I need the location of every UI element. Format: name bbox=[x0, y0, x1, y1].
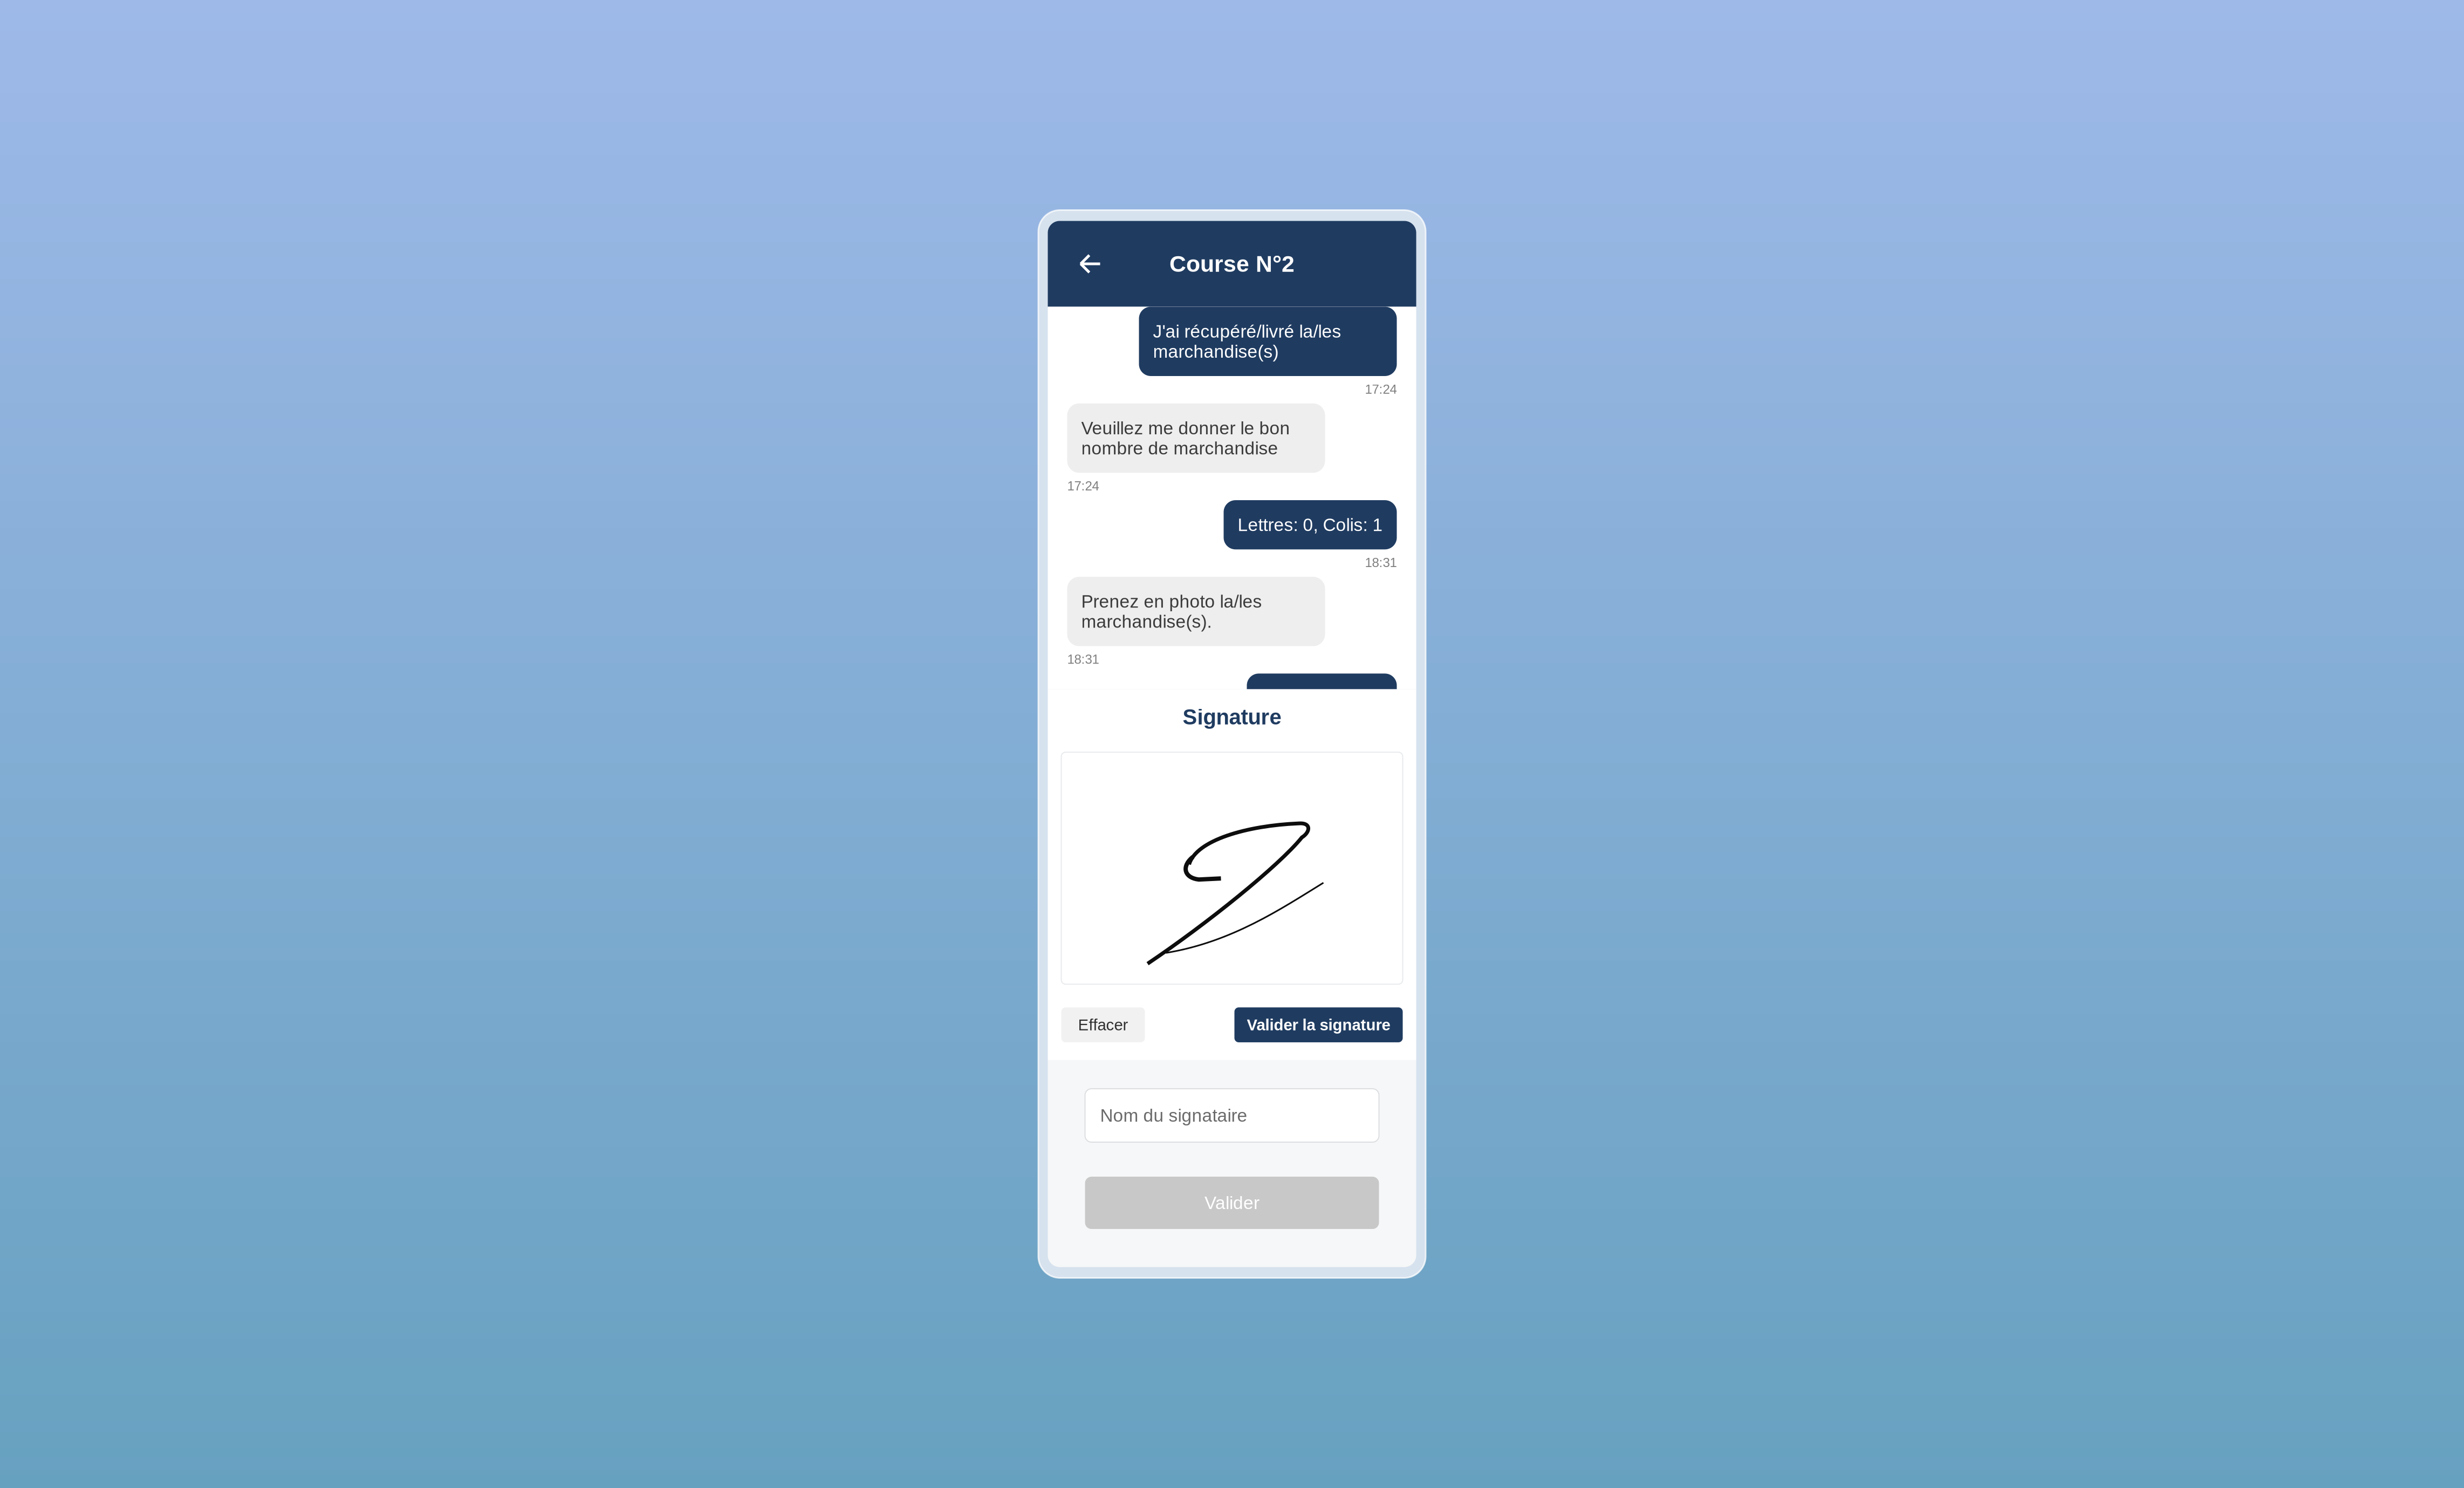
button[interactable]: Valider la signature bbox=[1234, 1007, 1403, 1042]
staticText: 18:31 bbox=[1365, 555, 1397, 570]
button[interactable]: Effacer bbox=[1061, 1007, 1145, 1042]
staticText: 18:31 bbox=[1067, 652, 1099, 667]
staticText: Photo envoyée bbox=[1261, 688, 1383, 708]
staticText: Signature bbox=[1183, 705, 1281, 729]
button[interactable]: Nom du signataire bbox=[1085, 1089, 1379, 1142]
staticText: J'ai récupéré/livré la/les marchandise(s… bbox=[1153, 321, 1341, 361]
staticText: 17:24 bbox=[1365, 382, 1397, 396]
staticText: Veuillez me donner le bon nombre de marc… bbox=[1081, 418, 1290, 458]
staticText: Effacer bbox=[1078, 1016, 1128, 1034]
staticText: Course N°2 bbox=[1169, 251, 1295, 277]
staticText: Prenez en photo la/les marchandise(s). bbox=[1081, 591, 1262, 632]
button[interactable]: Back bbox=[1048, 246, 1113, 282]
staticText: Nom du signataire bbox=[1100, 1105, 1247, 1125]
button[interactable]: Valider bbox=[1085, 1177, 1379, 1229]
staticText: Valider bbox=[1204, 1193, 1260, 1213]
staticText: Lettres: 0, Colis: 1 bbox=[1238, 515, 1383, 535]
staticText: 17:24 bbox=[1067, 479, 1099, 493]
staticText: Valider la signature bbox=[1247, 1016, 1390, 1034]
